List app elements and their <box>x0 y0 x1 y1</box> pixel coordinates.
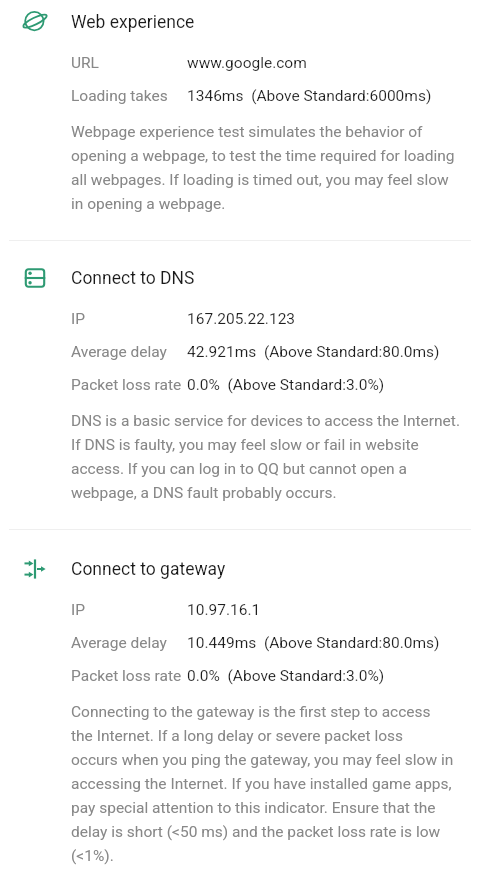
staticText: Connecting to the gateway is the first s… <box>71 703 454 865</box>
staticText: Connect to gateway <box>71 559 226 580</box>
other: Connect to DNS <box>0 267 71 289</box>
button[interactable]: Connect to gateway <box>0 530 480 892</box>
staticText: Packet loss rate <box>71 376 187 394</box>
other: Connect to gateway <box>0 558 71 580</box>
button[interactable]: Connect to DNS <box>0 241 480 530</box>
staticText: IP <box>71 310 187 328</box>
other: Web experience <box>0 11 71 33</box>
staticText: Loading takes <box>71 87 187 105</box>
button[interactable]: Web experience <box>0 0 480 241</box>
staticText: Web experience <box>71 12 195 33</box>
staticText: 42.921ms (Above Standard:80.0ms) <box>187 343 440 361</box>
staticText: 1346ms (Above Standard:6000ms) <box>187 87 432 105</box>
staticText: Connect to DNS <box>71 268 195 289</box>
staticText: IP <box>71 601 187 619</box>
staticText: DNS is a basic service for devices to ac… <box>71 412 460 502</box>
staticText: Packet loss rate <box>71 667 187 685</box>
staticText: 167.205.22.123 <box>187 310 296 328</box>
staticText: Average delay <box>71 634 187 652</box>
staticText: Webpage experience test simulates the be… <box>71 123 455 213</box>
staticText: Average delay <box>71 343 187 361</box>
staticText: 10.449ms (Above Standard:80.0ms) <box>187 634 440 652</box>
staticText: 0.0% (Above Standard:3.0%) <box>187 667 385 685</box>
staticText: 10.97.16.1 <box>187 601 261 619</box>
staticText: 0.0% (Above Standard:3.0%) <box>187 376 385 394</box>
staticText: www.google.com <box>187 54 307 72</box>
staticText: URL <box>71 54 187 72</box>
